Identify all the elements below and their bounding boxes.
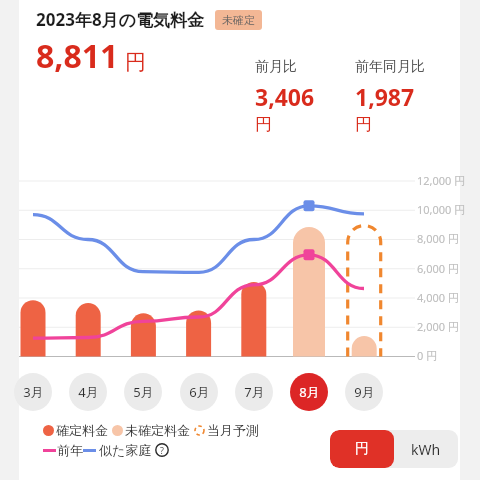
staticText: 6月 <box>189 383 210 401</box>
staticText: 前月比 <box>255 58 297 76</box>
staticText: 9月 <box>354 383 375 401</box>
staticText: 12,000 円 <box>417 173 466 188</box>
button[interactable]: 円 <box>330 430 394 468</box>
staticText: 当月予測 <box>207 422 259 438</box>
button[interactable]: 5月 <box>124 373 162 411</box>
staticText: 2023年8月の電気料金 <box>36 8 205 31</box>
staticText: 前年同月比 <box>355 58 425 76</box>
staticText: 3月 <box>23 383 44 401</box>
staticText: 6,000 円 <box>417 261 459 276</box>
staticText: 3,406 <box>255 81 315 112</box>
staticText: 円 <box>355 114 372 135</box>
staticText: 5月 <box>133 383 154 401</box>
staticText: 4月 <box>78 383 99 401</box>
button[interactable]: kWh <box>394 430 458 468</box>
button[interactable]: 7月 <box>235 373 273 411</box>
staticText: 0 円 <box>417 348 438 363</box>
button[interactable]: ヘルプ <box>155 443 169 457</box>
staticText: ? <box>160 444 164 456</box>
button[interactable]: 未確定 <box>215 10 262 30</box>
staticText: 2,000 円 <box>417 319 459 334</box>
button[interactable]: 9月 <box>345 373 383 411</box>
button[interactable]: 8月 <box>290 373 328 411</box>
staticText: 1,987 <box>355 81 415 112</box>
staticText: 円 <box>255 114 272 135</box>
staticText: 確定料金 <box>56 422 108 438</box>
button[interactable]: 4月 <box>69 373 107 411</box>
staticText: 未確定 <box>222 13 255 27</box>
staticText: 円 <box>125 49 146 75</box>
staticText: 7月 <box>244 383 265 401</box>
staticText: 未確定料金 <box>125 422 190 438</box>
staticText: kWh <box>411 440 441 459</box>
staticText: 前年 <box>57 442 83 458</box>
staticText: 8月 <box>299 383 320 401</box>
staticText: 10,000 円 <box>417 202 466 217</box>
staticText: 円 <box>355 440 369 458</box>
button[interactable]: 6月 <box>180 373 218 411</box>
button[interactable]: 3月 <box>14 373 52 411</box>
staticText: 8,000 円 <box>417 231 459 246</box>
staticText: 似た家庭 <box>99 442 152 458</box>
staticText: 4,000 円 <box>417 290 459 305</box>
staticText: 8,811 <box>36 34 119 78</box>
